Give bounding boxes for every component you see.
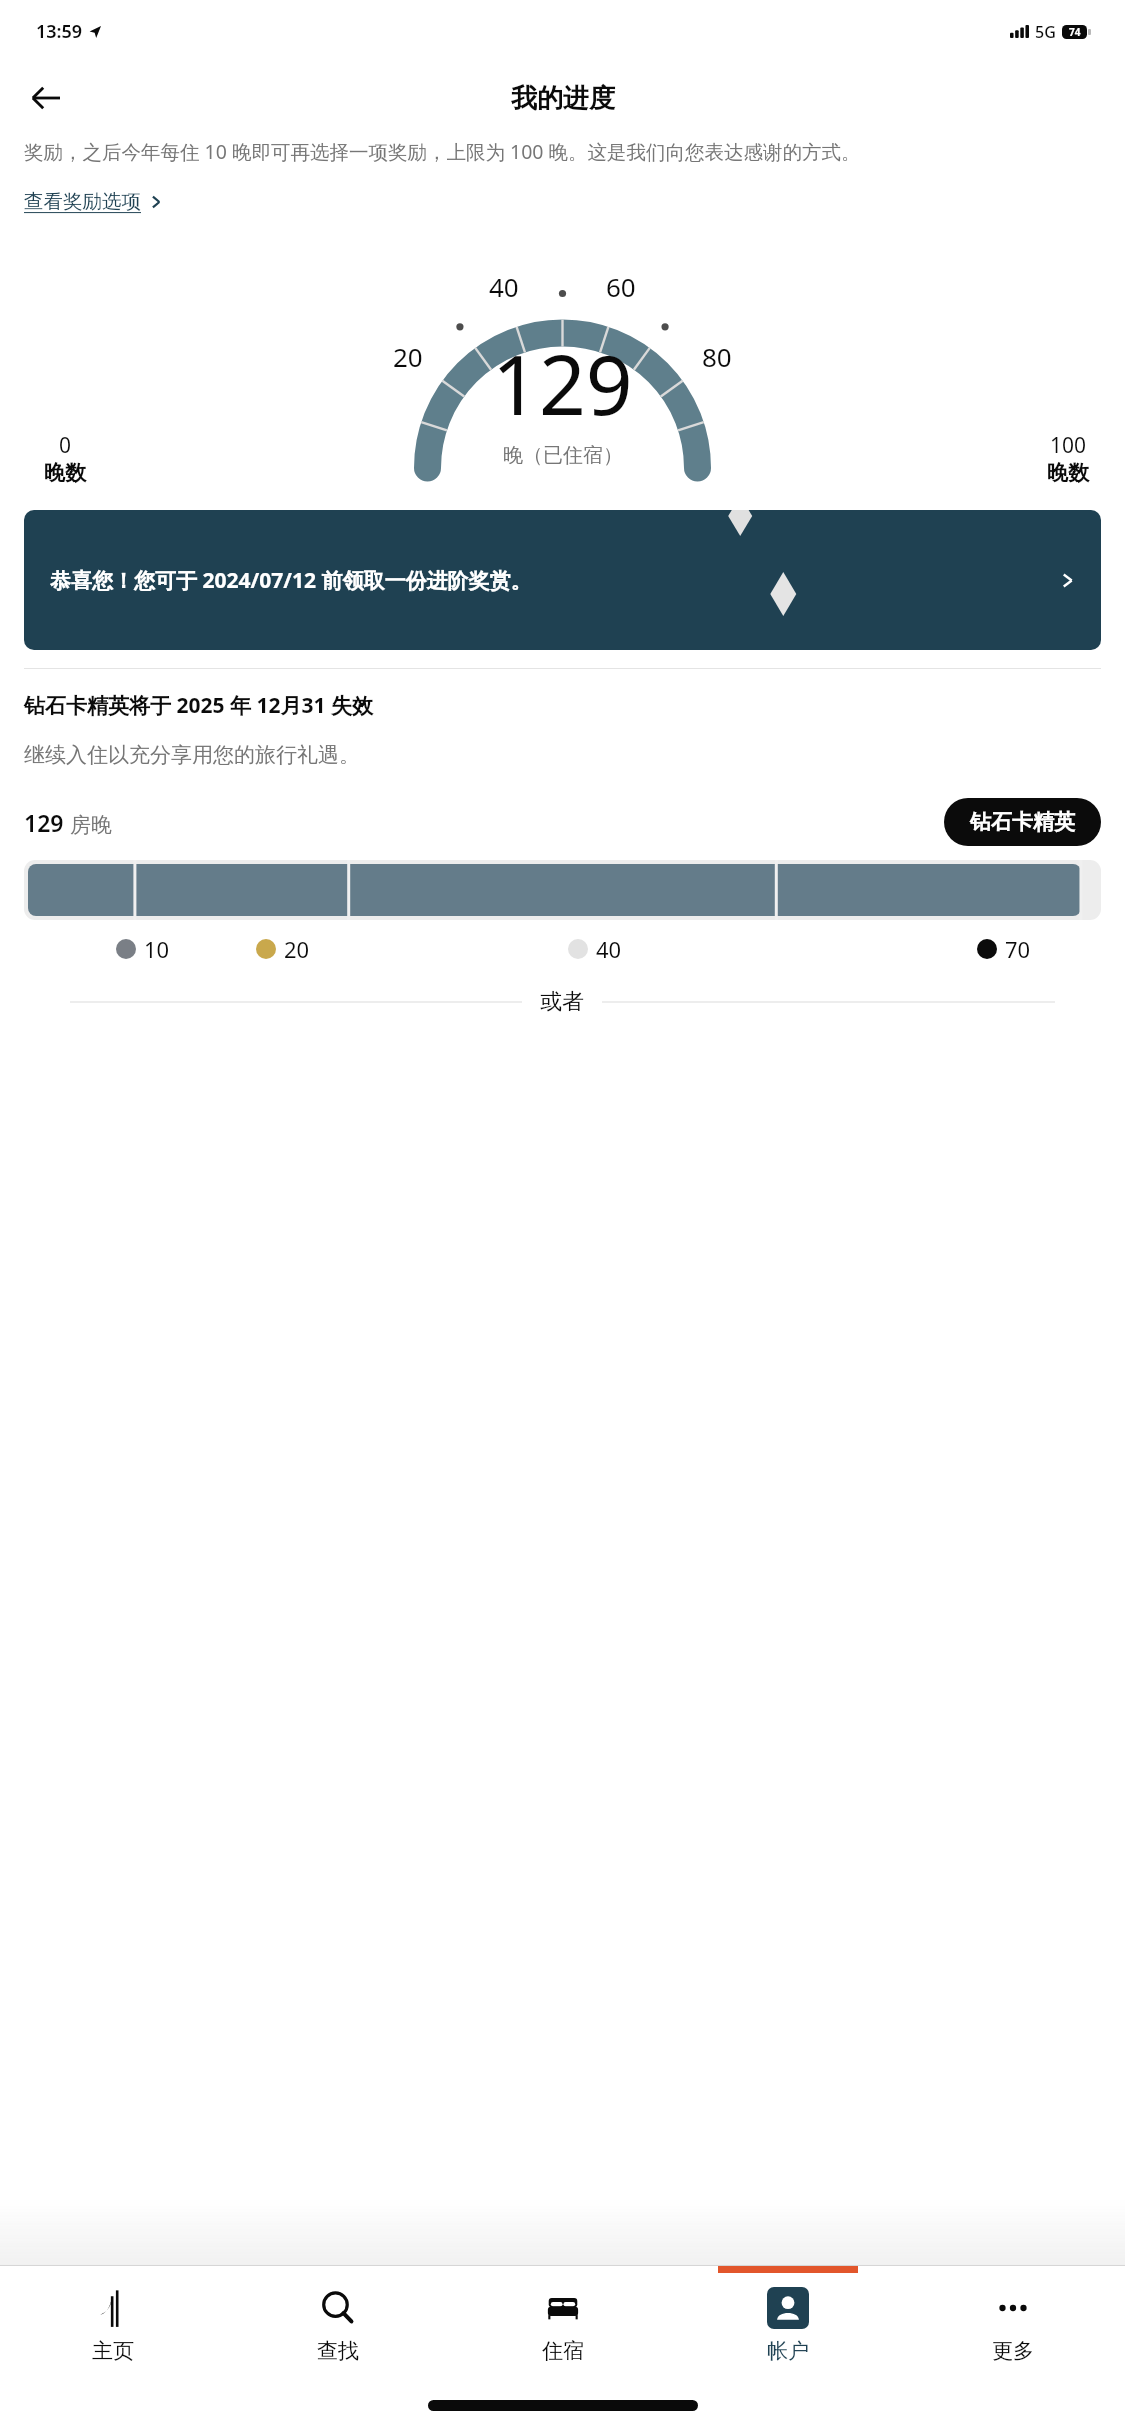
button[interactable]: Back xyxy=(18,70,74,126)
staticText: 60 xyxy=(606,269,636,304)
button[interactable]: 查看奖励选项 xyxy=(24,189,163,214)
staticText: 13:59 xyxy=(36,19,83,44)
staticText: 恭喜您！您可于 2024/07/12 前领取一份进阶奖赏。 xyxy=(50,566,532,595)
staticText: 更多 xyxy=(992,2338,1034,2364)
staticText: 主页 xyxy=(92,2338,134,2364)
button[interactable]: 恭喜您！您可于 2024/07/12 前领取一份进阶奖赏。 xyxy=(24,510,1101,650)
staticText: 40 xyxy=(596,934,622,964)
button[interactable]: 住宿 xyxy=(450,2266,675,2384)
button[interactable]: 更多 xyxy=(900,2266,1125,2384)
staticText: 74 xyxy=(1069,25,1081,39)
staticText: 10 xyxy=(144,934,170,964)
staticText: 我的进度 xyxy=(511,82,615,115)
staticText: 帐户 xyxy=(767,2338,809,2364)
button[interactable]: 查找 xyxy=(225,2266,450,2384)
staticText: 70 xyxy=(1005,934,1031,964)
staticText: 钻石卡精英将于 2025 年 12月31 失效 xyxy=(24,691,373,720)
staticText: 查找 xyxy=(317,2338,359,2364)
staticText: 房晚 xyxy=(70,812,112,838)
staticText: 住宿 xyxy=(542,2338,584,2364)
staticText: 晚数 xyxy=(1047,460,1089,486)
staticText: 继续入住以充分享用您的旅行礼遇。 xyxy=(24,742,360,768)
button[interactable]: 主页 xyxy=(0,2266,225,2384)
staticText: 20 xyxy=(284,934,310,964)
staticText: 或者 xyxy=(540,988,584,1016)
staticText: 129 xyxy=(492,327,633,439)
staticText: 奖励，之后今年每住 10 晚即可再选择一项奖励，上限为 100 晚。这是我们向您… xyxy=(24,138,1105,165)
staticText: 129 xyxy=(24,807,64,838)
staticText: 晚数 xyxy=(44,460,86,486)
staticText: 晚（已住宿） xyxy=(503,443,623,468)
staticText: 20 xyxy=(393,339,423,374)
staticText: 0 xyxy=(59,431,72,460)
button[interactable]: 帐户 xyxy=(675,2266,900,2384)
staticText: 查看奖励选项 xyxy=(24,189,141,214)
staticText: 40 xyxy=(489,269,519,304)
button[interactable]: 钻石卡精英 xyxy=(944,798,1101,846)
staticText: 80 xyxy=(702,339,732,374)
staticText: 钻石卡精英 xyxy=(970,809,1075,835)
staticText: 5G xyxy=(1035,21,1056,43)
staticText: 100 xyxy=(1050,431,1087,460)
